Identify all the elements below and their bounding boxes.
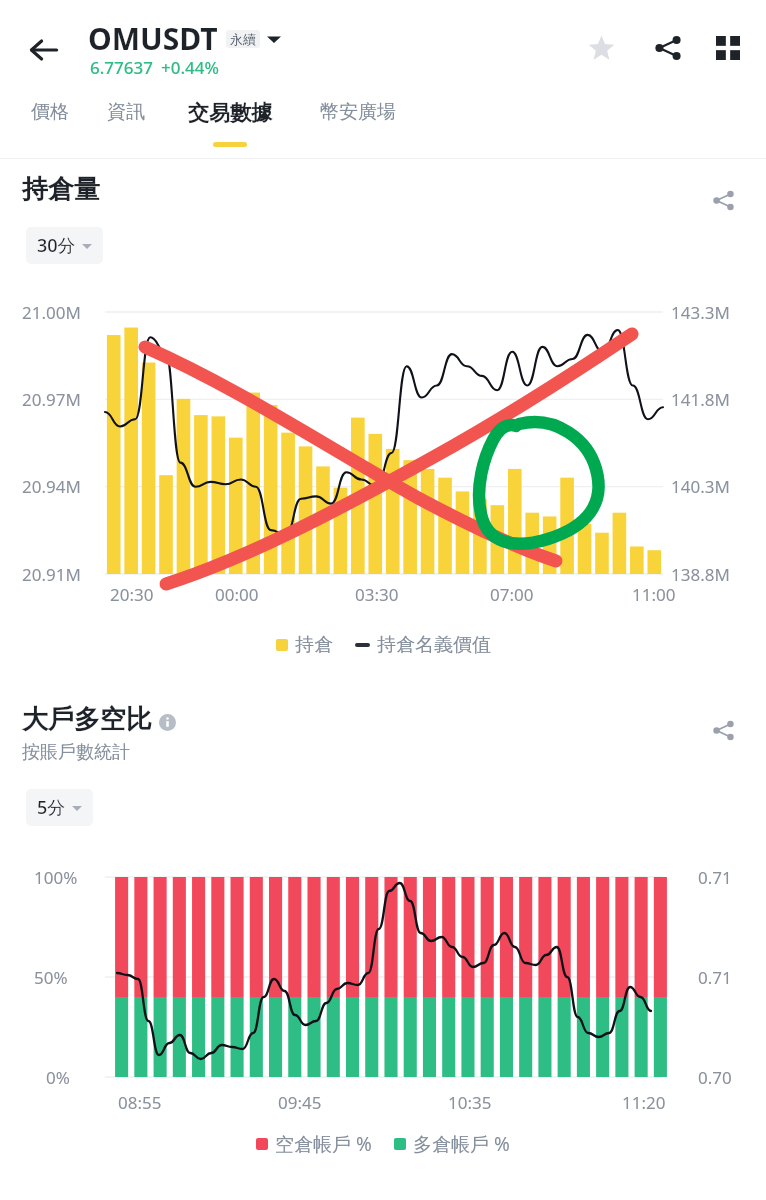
- staticText: 138.8M: [671, 563, 730, 586]
- staticText: 0%: [46, 1066, 70, 1089]
- button[interactable]: Share chart: [700, 177, 746, 223]
- staticText: 幣安廣場: [320, 100, 396, 124]
- button[interactable]: 5分: [26, 789, 93, 826]
- staticText: 20.94M: [22, 475, 81, 498]
- staticText: 0.71: [698, 866, 732, 889]
- staticText: 空倉帳戶 %: [275, 1131, 372, 1157]
- staticText: 5分: [37, 795, 66, 820]
- staticText: 20:30: [110, 583, 154, 606]
- staticText: 0.70: [698, 1066, 732, 1089]
- button[interactable]: Share chart: [700, 707, 746, 753]
- staticText: 10:35: [448, 1091, 492, 1114]
- staticText: +0.44%: [161, 56, 220, 79]
- staticText: 交易數據: [188, 100, 272, 126]
- button[interactable]: 資訊: [98, 100, 154, 146]
- staticText: 07:00: [490, 583, 534, 606]
- staticText: 141.8M: [671, 388, 730, 411]
- staticText: 持倉量: [22, 173, 100, 206]
- staticText: 03:30: [355, 583, 399, 606]
- staticText: 持倉: [295, 633, 333, 657]
- staticText: 大戶多空比: [22, 703, 152, 736]
- staticText: 11:00: [632, 583, 676, 606]
- staticText: 09:45: [278, 1091, 322, 1114]
- staticText: 0.71: [698, 966, 732, 989]
- staticText: 143.3M: [671, 301, 730, 324]
- staticText: 21.00M: [22, 301, 81, 324]
- staticText: 資訊: [107, 100, 145, 124]
- button[interactable]: 交易數據: [176, 100, 284, 146]
- staticText: 價格: [31, 100, 69, 124]
- staticText: OMUSDT: [88, 18, 218, 59]
- button[interactable]: 價格: [22, 100, 78, 146]
- button[interactable]: 30分: [26, 227, 103, 264]
- button[interactable]: Back: [16, 22, 72, 78]
- staticText: 20.97M: [22, 388, 81, 411]
- button[interactable]: Share: [642, 22, 694, 74]
- staticText: 持倉名義價值: [377, 633, 491, 657]
- staticText: 20.91M: [22, 563, 81, 586]
- button[interactable]: 幣安廣場: [304, 100, 412, 146]
- staticText: 按賬戶數統計: [22, 741, 130, 764]
- staticText: 100%: [34, 866, 78, 889]
- staticText: 多倉帳戶 %: [413, 1131, 510, 1157]
- staticText: 08:55: [118, 1091, 162, 1114]
- staticText: 140.3M: [671, 475, 730, 498]
- staticText: 永續: [230, 31, 256, 47]
- staticText: 6.77637: [90, 56, 153, 79]
- button[interactable]: More: [702, 22, 754, 74]
- staticText: 11:20: [622, 1091, 666, 1114]
- button[interactable]: Favorite: [575, 22, 627, 74]
- staticText: 30分: [37, 233, 76, 258]
- staticText: 50%: [34, 966, 68, 989]
- staticText: 00:00: [215, 583, 259, 606]
